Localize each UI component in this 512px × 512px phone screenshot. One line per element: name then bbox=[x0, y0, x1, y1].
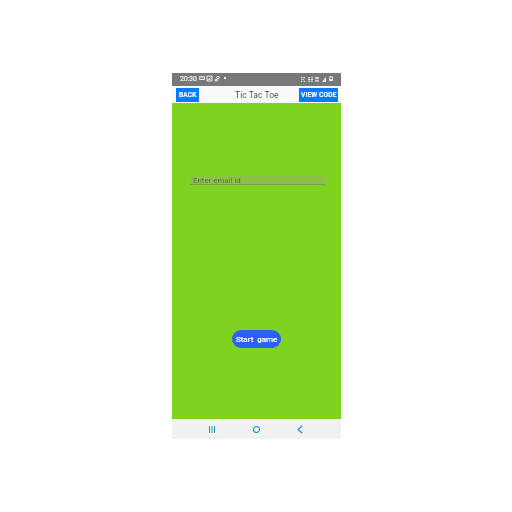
staticText: VIEW CODE bbox=[301, 91, 337, 99]
button[interactable]: Recents bbox=[202, 419, 222, 439]
button[interactable]: Back bbox=[290, 419, 310, 439]
button[interactable]: VIEW CODE bbox=[299, 88, 338, 102]
staticText: Enter email id bbox=[193, 176, 241, 185]
staticText: BACK bbox=[179, 91, 197, 99]
button[interactable]: Start game bbox=[232, 330, 281, 348]
staticText: Start game bbox=[236, 335, 278, 344]
staticText: Tic Tac Toe bbox=[235, 90, 279, 100]
staticText: 20:30 bbox=[180, 75, 197, 83]
button[interactable]: BACK bbox=[176, 88, 199, 102]
button[interactable]: Home bbox=[246, 419, 266, 439]
button[interactable]: Enter email id bbox=[190, 175, 325, 185]
